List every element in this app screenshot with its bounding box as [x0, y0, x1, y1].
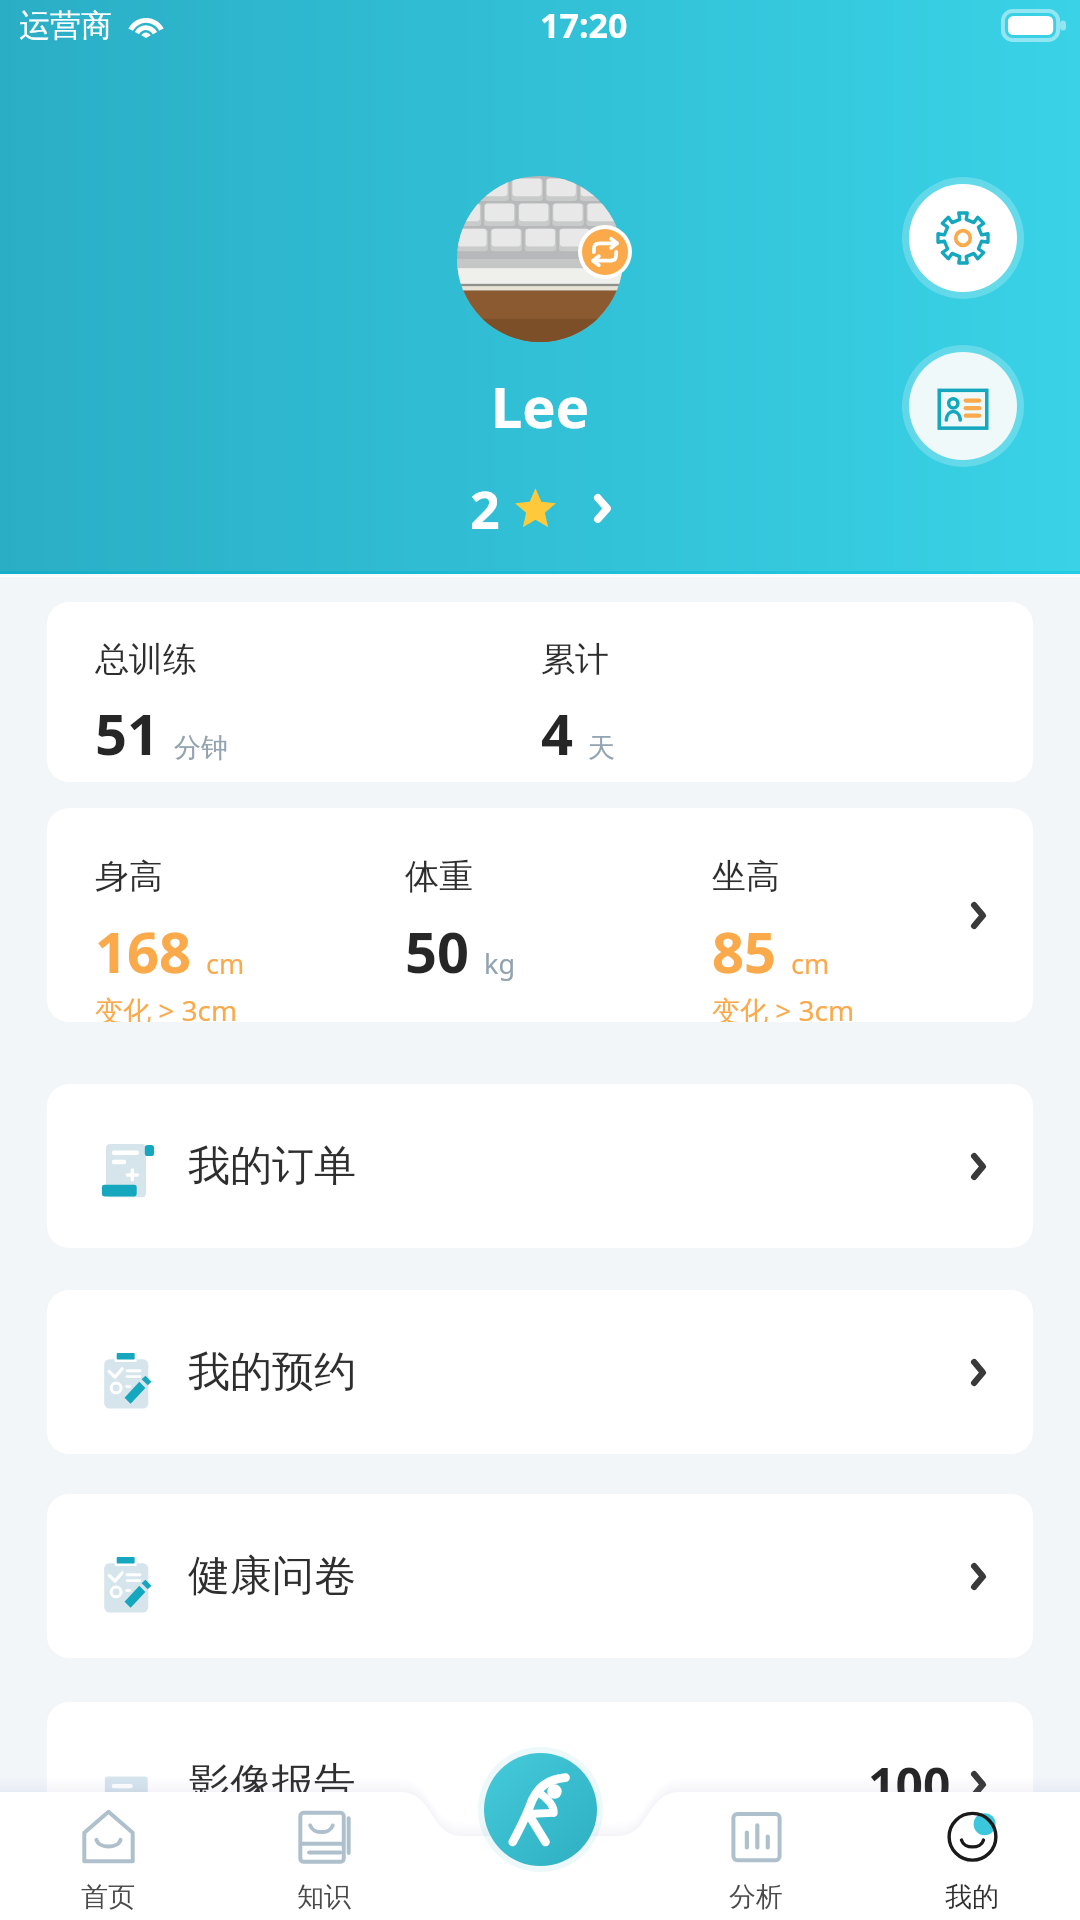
staticText: 100 — [868, 1752, 951, 1817]
staticText: 变化 > 3cm — [712, 991, 855, 1022]
staticText: 我的预约 — [188, 1346, 356, 1399]
staticText: 坐高 — [712, 855, 780, 898]
staticText: 我的订单 — [188, 1140, 356, 1193]
staticText: 累计 — [541, 638, 609, 681]
staticText: Lee — [491, 368, 590, 444]
staticText: 17:20 — [540, 2, 628, 48]
staticText: 2 — [470, 473, 500, 544]
button[interactable]: 我的预约 — [47, 1290, 1033, 1454]
button[interactable]: 首页 — [0, 1792, 216, 1920]
button[interactable]: Settings — [909, 184, 1017, 292]
button[interactable]: 分析 — [648, 1792, 864, 1920]
staticText: 天 — [588, 731, 615, 765]
staticText: 体重 — [405, 855, 473, 898]
staticText: 168 — [95, 913, 192, 989]
button[interactable]: Start training — [484, 1753, 597, 1866]
staticText: 健康问卷 — [188, 1550, 356, 1603]
button[interactable]: 身高 — [47, 808, 1033, 1022]
button[interactable]: 健康问卷 — [47, 1494, 1033, 1658]
staticText: cm — [206, 945, 245, 982]
button[interactable]: Profile photo — [457, 176, 623, 342]
button[interactable]: 知识 — [216, 1792, 432, 1920]
button[interactable]: Member card — [909, 352, 1017, 460]
staticText: 分析 — [729, 1880, 783, 1914]
staticText: 影像报告 — [188, 1758, 356, 1811]
staticText: 总训练 — [95, 638, 197, 681]
staticText: cm — [791, 945, 830, 982]
staticText: 知识 — [297, 1880, 351, 1914]
staticText: 运营商 — [19, 6, 112, 45]
button[interactable]: 影像报告 — [47, 1702, 1033, 1866]
button[interactable]: 我的订单 — [47, 1084, 1033, 1248]
staticText: 我的 — [945, 1880, 999, 1914]
staticText: 4 — [541, 695, 574, 771]
staticText: 分钟 — [174, 731, 228, 765]
staticText: 变化 > 3cm — [95, 991, 238, 1022]
staticText: kg — [484, 945, 516, 982]
staticText: 51 — [95, 695, 160, 771]
staticText: 首页 — [81, 1880, 135, 1914]
staticText: 身高 — [95, 855, 163, 898]
button[interactable]: 我的 — [864, 1792, 1080, 1920]
button[interactable]: 总训练 — [47, 602, 1033, 782]
staticText: 50 — [405, 913, 470, 989]
staticText: 85 — [712, 913, 777, 989]
button[interactable]: Switch profile — [582, 229, 628, 275]
button[interactable]: 2 — [470, 473, 611, 544]
